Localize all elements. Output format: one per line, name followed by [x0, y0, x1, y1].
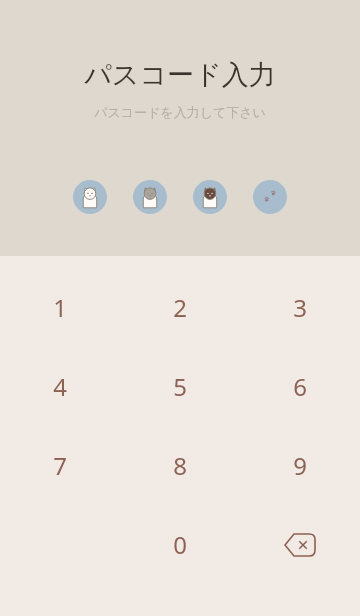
button[interactable]: 6	[240, 347, 360, 426]
button[interactable]: 9	[240, 426, 360, 505]
button[interactable]: 5	[120, 347, 240, 426]
button[interactable]: 7	[0, 426, 120, 505]
staticText: 2	[173, 291, 187, 324]
staticText: 9	[293, 449, 307, 482]
staticText: 7	[53, 449, 67, 482]
staticText: パスコード入力	[84, 58, 276, 92]
staticText: 4	[53, 370, 67, 403]
button[interactable]: Passcode digit 3	[193, 180, 227, 214]
staticText: 0	[173, 528, 187, 561]
button[interactable]: 0	[120, 505, 240, 584]
button[interactable]: Passcode digit 1	[73, 180, 107, 214]
staticText: 8	[173, 449, 187, 482]
staticText: 6	[293, 370, 307, 403]
staticText: 3	[293, 291, 307, 324]
button[interactable]: 4	[0, 347, 120, 426]
button[interactable]: 1	[0, 268, 120, 347]
button[interactable]: Passcode digit 4	[253, 180, 287, 214]
staticText: 1	[53, 291, 67, 324]
button[interactable]: 3	[240, 268, 360, 347]
staticText: パスコードを入力して下さい	[94, 104, 266, 120]
button[interactable]: Backspace	[240, 505, 360, 584]
button[interactable]: 8	[120, 426, 240, 505]
button[interactable]: 2	[120, 268, 240, 347]
staticText: 5	[173, 370, 187, 403]
button[interactable]: Passcode digit 2	[133, 180, 167, 214]
